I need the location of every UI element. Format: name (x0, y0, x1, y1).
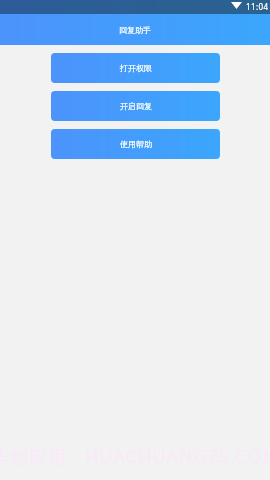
button[interactable]: 打开权限 (51, 53, 220, 83)
button[interactable]: 开启回复 (51, 91, 220, 121)
staticText: 使用帮助 (120, 139, 152, 149)
staticText: 回复助手 (119, 25, 151, 35)
staticText: 打开权限 (120, 63, 152, 73)
staticText: 开启回复 (120, 101, 152, 111)
staticText: 11:04 (246, 1, 269, 12)
staticText: 华创应用 · HUACHUANGZS.COM (0, 444, 270, 469)
other: Wi-Fi (231, 2, 242, 9)
button[interactable]: 使用帮助 (51, 129, 220, 159)
